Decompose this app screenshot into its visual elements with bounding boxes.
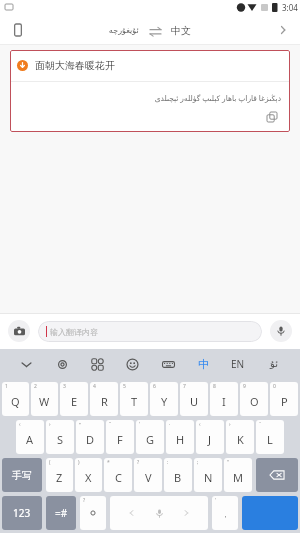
staticText: 面朝大海春暖花开 (35, 59, 115, 72)
staticText: 输入翻译内容 (50, 327, 98, 337)
button[interactable]: 123 (2, 496, 42, 530)
staticText: E (71, 394, 78, 409)
staticText: P (281, 394, 288, 409)
button[interactable]: 0 (270, 382, 298, 416)
button[interactable]: Camera (8, 320, 30, 342)
staticText: Q (11, 394, 20, 409)
staticText: ' (215, 497, 217, 504)
button[interactable]: 2 (31, 382, 58, 416)
button[interactable]: 输入翻译内容 (38, 321, 262, 342)
staticText: 7 (183, 383, 186, 390)
button[interactable]: Stickers (84, 351, 110, 377)
staticText: › (229, 421, 231, 428)
staticText: ˜ (259, 421, 262, 428)
button[interactable]: ئۇ (261, 351, 287, 377)
button[interactable]: Swap languages (145, 21, 165, 41)
button[interactable]: 1 (2, 382, 29, 416)
staticText: · (169, 421, 171, 428)
staticText: I (222, 394, 226, 409)
staticText: X (85, 470, 92, 485)
button[interactable]: Emoji (119, 351, 145, 377)
button[interactable]: : (164, 458, 192, 492)
button[interactable]: Symbols (80, 496, 106, 530)
staticText: W (39, 394, 50, 409)
button[interactable]: 9 (240, 382, 268, 416)
staticText: G (146, 432, 155, 447)
button[interactable]: =# (46, 496, 76, 530)
button[interactable]: Voice input (270, 320, 292, 342)
staticText: K (237, 432, 244, 447)
button[interactable]: 中 (190, 351, 216, 377)
button[interactable]: 7 (180, 382, 208, 416)
staticText: =# (55, 506, 68, 520)
staticText: ( (49, 459, 51, 466)
button[interactable]: ئۇيغۇرچە (103, 22, 145, 39)
button[interactable]: · (166, 420, 194, 454)
staticText: 9 (243, 383, 246, 390)
staticText: EN (231, 357, 245, 371)
button[interactable]: ( (46, 458, 73, 492)
button[interactable]: 5 (120, 382, 148, 416)
button[interactable]: Copy (263, 108, 281, 126)
button[interactable]: " (224, 458, 252, 492)
staticText: O (250, 394, 259, 409)
button[interactable]: 8 (210, 382, 238, 416)
button[interactable]: Space (110, 496, 208, 530)
staticText: ‹ (19, 421, 21, 428)
button[interactable]: Keyboard layout (155, 351, 181, 377)
staticText: 手写 (12, 469, 32, 482)
button[interactable]: More (272, 19, 294, 41)
button[interactable]: 中文 (165, 20, 197, 41)
button[interactable]: › (226, 420, 254, 454)
button[interactable]: ? (134, 458, 162, 492)
button[interactable]: Settings (49, 351, 75, 377)
button[interactable]: History (6, 18, 30, 42)
button[interactable]: Backspace (256, 458, 298, 492)
staticText: L (267, 432, 273, 447)
button[interactable]: EN (225, 351, 251, 377)
staticText: ʼ (139, 421, 140, 428)
button[interactable]: ‹ (196, 420, 224, 454)
button[interactable]: 面朝大海春暖花开 (10, 50, 290, 132)
staticText: * (107, 459, 110, 466)
staticText: ? (137, 459, 140, 466)
staticText: 6 (153, 383, 156, 390)
staticText: 4 (93, 383, 96, 390)
button[interactable]: 6 (150, 382, 178, 416)
button[interactable]: ‹ (16, 420, 44, 454)
button[interactable]: ; (194, 458, 222, 492)
button[interactable]: › (46, 420, 74, 454)
staticText: • (79, 421, 81, 428)
staticText: 1 (5, 383, 8, 390)
staticText: ‹ (199, 421, 201, 428)
staticText: ， (222, 510, 229, 519)
staticText: 8 (213, 383, 216, 390)
staticText: ? (83, 497, 86, 504)
staticText: B (174, 470, 182, 485)
button[interactable]: 手写 (2, 458, 42, 492)
button[interactable]: Collapse keyboard (13, 351, 39, 377)
button[interactable]: ) (75, 458, 102, 492)
button[interactable]: 4 (90, 382, 118, 416)
button[interactable]: 3 (60, 382, 88, 416)
button[interactable]: ʼ (136, 420, 164, 454)
button[interactable]: Enter (242, 496, 298, 530)
staticText: دېڭىزغا قاراپ باھار كېلىپ گۈللەر ئېچىلدى (154, 93, 281, 103)
button[interactable]: • (76, 420, 104, 454)
staticText: 123 (13, 506, 31, 520)
button[interactable]: ˆ (106, 420, 134, 454)
staticText: S (57, 432, 64, 447)
button[interactable]: * (104, 458, 132, 492)
button[interactable]: ˜ (256, 420, 284, 454)
staticText: J (208, 432, 212, 447)
staticText: ) (78, 459, 80, 466)
staticText: T (131, 394, 138, 409)
button[interactable]: Comma (212, 496, 238, 530)
staticText: V (145, 470, 152, 485)
staticText: ئۇ (270, 358, 278, 370)
staticText: N (204, 470, 213, 485)
staticText: D (86, 432, 95, 447)
staticText: M (233, 470, 243, 485)
staticText: 3 (63, 383, 66, 390)
staticText: " (227, 459, 230, 466)
